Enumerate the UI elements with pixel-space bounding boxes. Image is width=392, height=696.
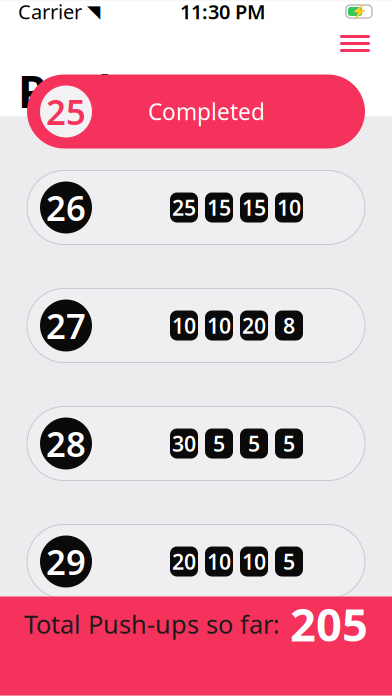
staticText: 5 — [248, 429, 260, 458]
staticText: 5 — [283, 547, 295, 576]
staticText: 5 — [283, 429, 295, 458]
button[interactable]: Menu — [332, 27, 378, 60]
staticText: 28 — [46, 420, 86, 466]
staticText: 10 — [242, 547, 266, 576]
staticText: 205 — [290, 594, 368, 654]
staticText: 27 — [46, 302, 86, 348]
staticText: 30 — [172, 429, 196, 458]
staticText: 15 — [242, 193, 266, 222]
button[interactable]: 26 — [27, 170, 365, 244]
staticText: 8 — [283, 311, 295, 340]
button[interactable]: 29 — [27, 524, 365, 598]
staticText: 10 — [172, 311, 196, 340]
staticText: 10 — [207, 311, 231, 340]
staticText: 26 — [46, 184, 86, 230]
staticText: 15 — [207, 193, 231, 222]
staticText: 11:30 PM — [180, 0, 266, 25]
button[interactable]: 25 — [27, 74, 365, 148]
staticText: 29 — [46, 538, 86, 584]
staticText: 10 — [207, 547, 231, 576]
button[interactable]: 27 — [27, 288, 365, 362]
staticText: 5 — [213, 429, 225, 458]
staticText: Completed — [148, 96, 265, 126]
staticText: Carrier — [18, 0, 82, 25]
staticText: ⚡ — [350, 4, 367, 19]
staticText: Push It! — [18, 60, 190, 121]
staticText: 20 — [172, 547, 196, 576]
button[interactable]: 28 — [27, 406, 365, 480]
staticText: 10 — [277, 193, 301, 222]
staticText: Total Push-ups so far: — [24, 607, 280, 641]
staticText: ◥ — [87, 2, 100, 21]
staticText: 25 — [46, 88, 86, 134]
staticText: 25 — [172, 193, 196, 222]
staticText: 20 — [242, 311, 266, 340]
